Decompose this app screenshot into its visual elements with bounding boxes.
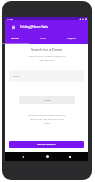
staticText: View Top Individuals <box>37 143 56 146</box>
staticText: Folding@Home Stats <box>20 25 48 29</box>
button[interactable]: Search <box>19 96 75 104</box>
button[interactable]: Recent apps <box>65 152 75 161</box>
staticText: 11:36 <box>7 17 14 20</box>
staticText: DONORS <box>11 37 20 40</box>
button[interactable]: DONORS <box>2 33 29 44</box>
staticText: Donor <box>13 75 20 78</box>
button[interactable]: PROJECTS <box>57 33 85 44</box>
staticText: No Donors currently loaded. Search for a… <box>23 114 71 125</box>
button[interactable]: Back <box>18 152 28 161</box>
staticText: Enter a Donor's name or number to see th… <box>27 55 67 62</box>
button[interactable]: View Top Individuals <box>9 141 84 148</box>
staticText: Search <box>44 99 51 102</box>
staticText: TEAMS <box>40 37 47 40</box>
button[interactable]: Open navigation menu <box>9 23 17 31</box>
staticText: Search for a Donor <box>31 47 63 52</box>
staticText: PROJECTS <box>67 37 76 40</box>
button[interactable]: TEAMS <box>29 33 57 44</box>
button[interactable]: Home <box>42 152 52 161</box>
